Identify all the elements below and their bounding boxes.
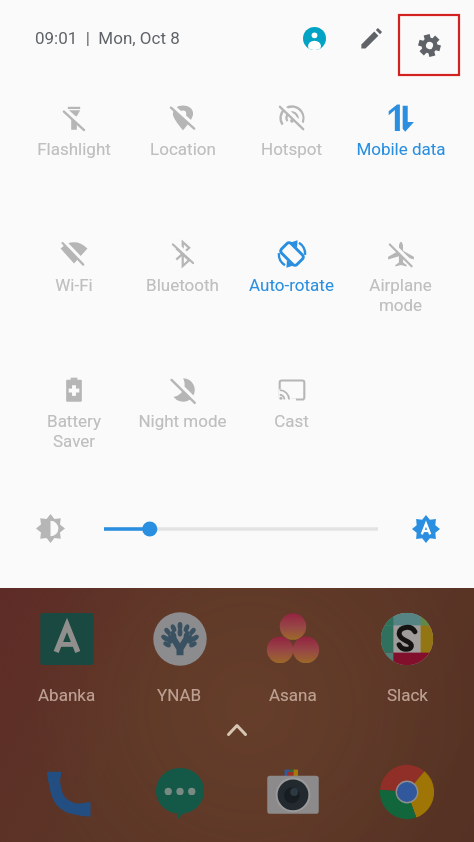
button[interactable]: Settings [398, 14, 460, 76]
staticText: 09:01 | Mon, Oct 8 [35, 28, 180, 48]
button[interactable]: Asana [236, 612, 350, 705]
staticText: Cast [274, 411, 309, 431]
button[interactable]: Auto-rotate [237, 212, 346, 348]
button[interactable]: Chrome [350, 764, 464, 820]
button[interactable]: Abanka [10, 612, 123, 705]
staticText: YNAB [157, 685, 202, 705]
staticText: Mobile data [356, 139, 446, 159]
button[interactable]: Wi-Fi [19, 212, 128, 348]
button[interactable]: Location [128, 76, 237, 212]
staticText: Slack [387, 685, 428, 705]
staticText: Abanka [38, 685, 96, 705]
button[interactable]: Brightness [96, 514, 386, 544]
button[interactable]: Messages [123, 764, 236, 820]
button[interactable]: Phone [10, 764, 123, 820]
button[interactable]: Edit tiles [347, 14, 395, 62]
button[interactable]: User account [290, 14, 338, 62]
staticText: Asana [269, 685, 317, 705]
button[interactable]: Mobile data [346, 76, 455, 212]
button[interactable]: Hotspot [237, 76, 346, 212]
button[interactable]: Camera [236, 764, 350, 820]
button[interactable]: Auto brightness [406, 509, 446, 549]
staticText: Airplane mode [369, 275, 432, 315]
staticText: Night mode [138, 411, 227, 431]
button[interactable]: Cast [237, 348, 346, 484]
staticText: Hotspot [261, 139, 322, 159]
button[interactable]: Bluetooth [128, 212, 237, 348]
button[interactable]: App drawer [0, 720, 474, 740]
button[interactable]: YNAB [123, 612, 236, 705]
staticText: Bluetooth [146, 275, 219, 295]
button[interactable]: Night mode [128, 348, 237, 484]
button[interactable]: Battery Saver [19, 348, 128, 484]
button[interactable]: Airplane mode [346, 212, 455, 348]
button[interactable]: Slack [350, 612, 464, 705]
button[interactable]: Flashlight [19, 76, 128, 212]
staticText: Flashlight [37, 139, 111, 159]
staticText: Battery Saver [47, 411, 101, 451]
staticText: Wi-Fi [55, 275, 93, 295]
staticText: Auto-rotate [249, 275, 334, 295]
staticText: Location [150, 139, 216, 159]
